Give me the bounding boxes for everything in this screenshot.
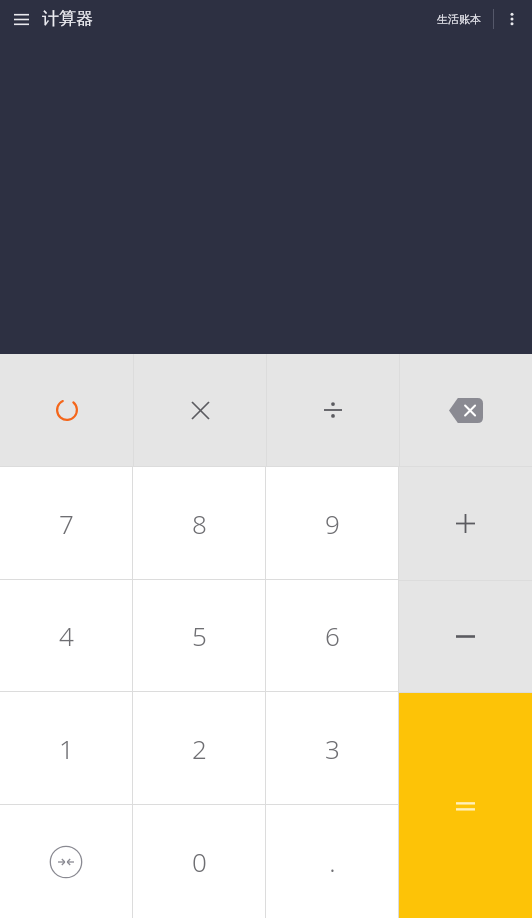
staticText: 7 — [59, 506, 74, 541]
button[interactable]: Divide — [267, 354, 399, 466]
staticText: 生活账本 — [437, 12, 481, 26]
button[interactable]: 2 — [133, 692, 265, 804]
staticText: 2 — [192, 731, 207, 766]
button[interactable]: Plus — [399, 467, 532, 580]
staticText: 4 — [59, 618, 74, 653]
staticText: 9 — [325, 506, 340, 541]
staticText: . — [329, 844, 336, 879]
staticText: 计算器 — [42, 8, 93, 29]
button[interactable]: 0 — [133, 805, 265, 918]
button[interactable]: 9 — [266, 467, 398, 579]
button[interactable]: Backspace — [400, 354, 532, 466]
staticText: 6 — [325, 618, 340, 653]
staticText: 1 — [59, 731, 74, 766]
button[interactable]: More options — [494, 1, 530, 37]
button[interactable]: 5 — [133, 580, 265, 691]
button[interactable]: 4 — [0, 580, 132, 691]
button[interactable]: Equals — [399, 693, 532, 918]
button[interactable]: 6 — [266, 580, 398, 691]
staticText: 8 — [192, 506, 207, 541]
button[interactable]: Menu — [4, 2, 38, 36]
button[interactable]: 7 — [0, 467, 132, 579]
button[interactable]: 1 — [0, 692, 132, 804]
staticText: 0 — [192, 844, 207, 879]
button[interactable]: Clear — [0, 354, 133, 466]
button[interactable]: Multiply — [134, 354, 266, 466]
button[interactable]: Swap — [0, 805, 132, 918]
button[interactable]: 8 — [133, 467, 265, 579]
button[interactable]: 3 — [266, 692, 398, 804]
button[interactable]: Minus — [399, 581, 532, 692]
staticText: 3 — [325, 731, 340, 766]
staticText: 5 — [192, 618, 207, 653]
button[interactable]: 生活账本 — [431, 6, 487, 32]
